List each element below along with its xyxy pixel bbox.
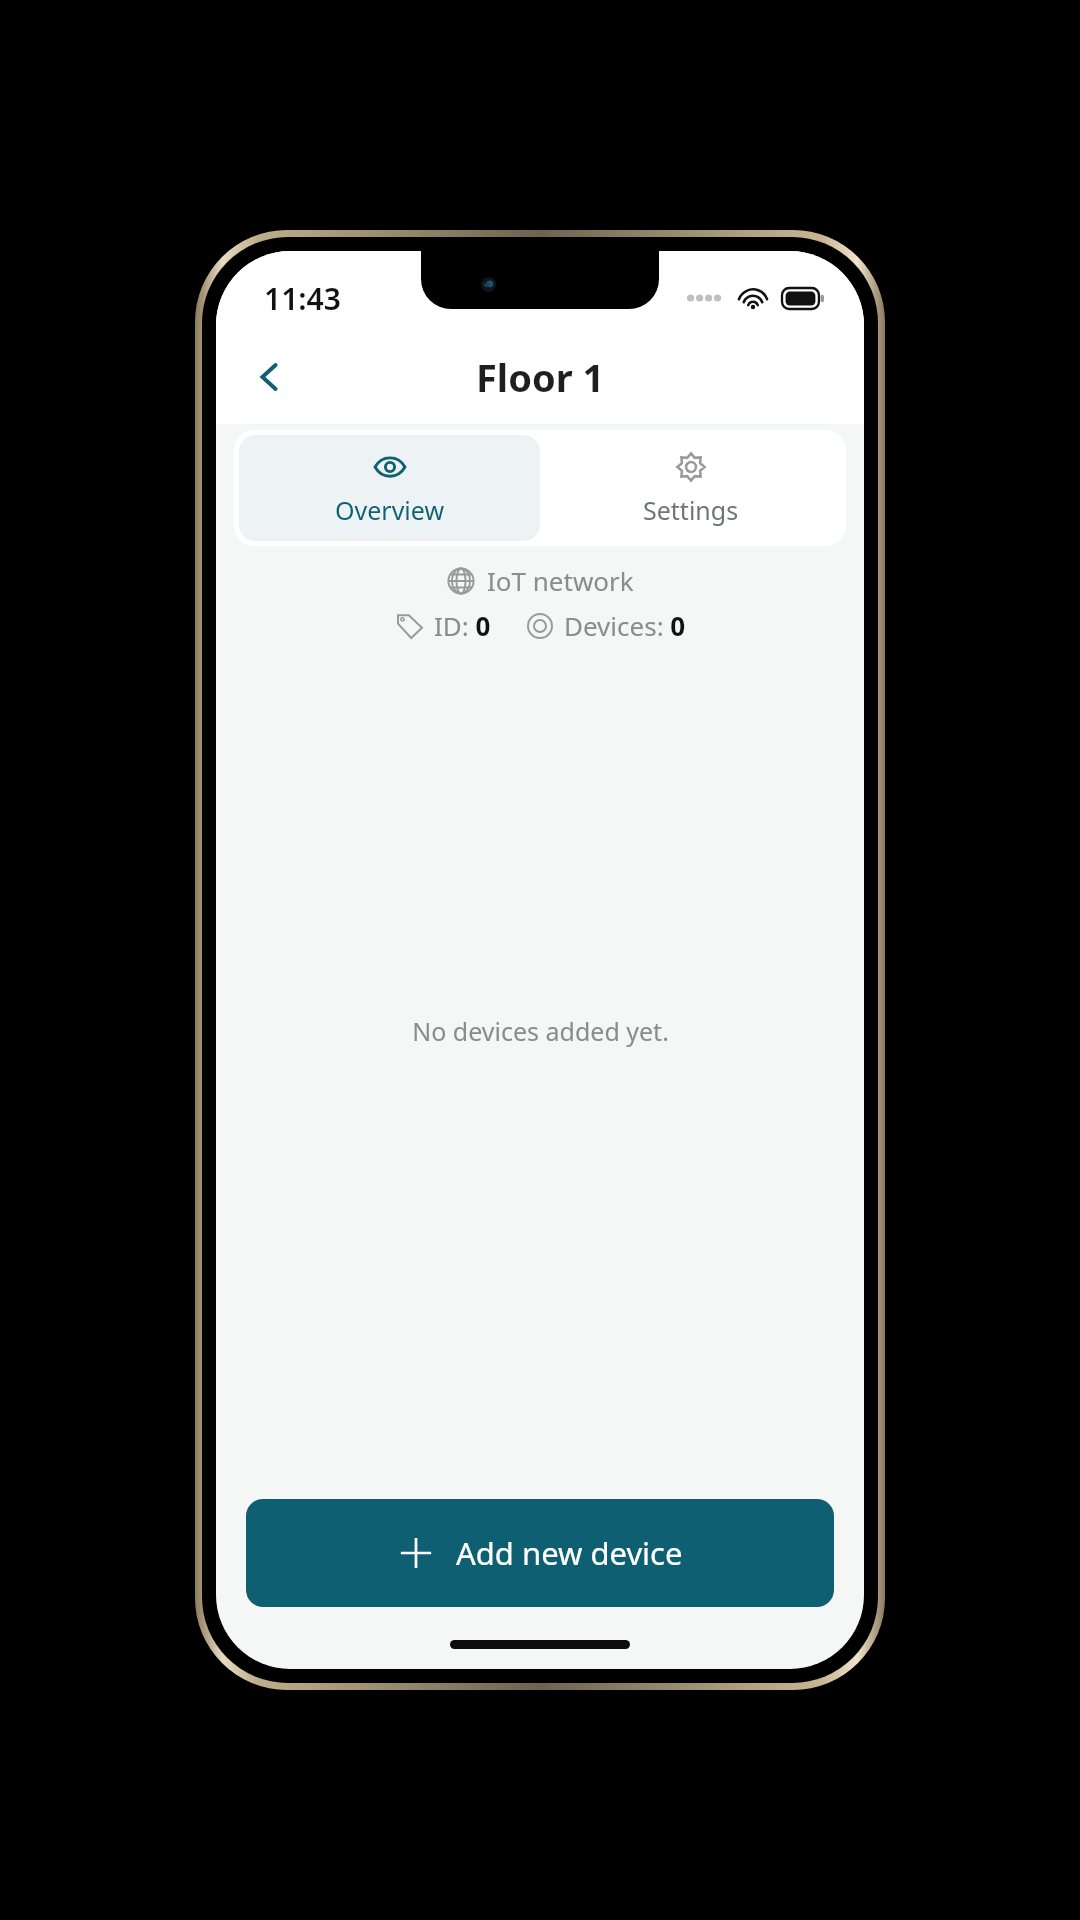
staticText: Devices: 0	[564, 608, 686, 643]
staticText: IoT network	[487, 563, 634, 598]
staticText: Settings	[643, 493, 739, 527]
staticText: Floor 1	[476, 351, 605, 403]
button[interactable]: Overview	[239, 435, 540, 541]
button[interactable]: Add new device	[246, 1499, 834, 1607]
staticText: 11:43	[264, 278, 341, 319]
button[interactable]: Settings	[540, 435, 841, 541]
staticText: Add new device	[456, 1532, 683, 1574]
button[interactable]: Back	[238, 346, 300, 408]
staticText: ID: 0	[434, 608, 491, 643]
staticText: Overview	[335, 493, 445, 527]
staticText: No devices added yet.	[412, 1014, 669, 1048]
